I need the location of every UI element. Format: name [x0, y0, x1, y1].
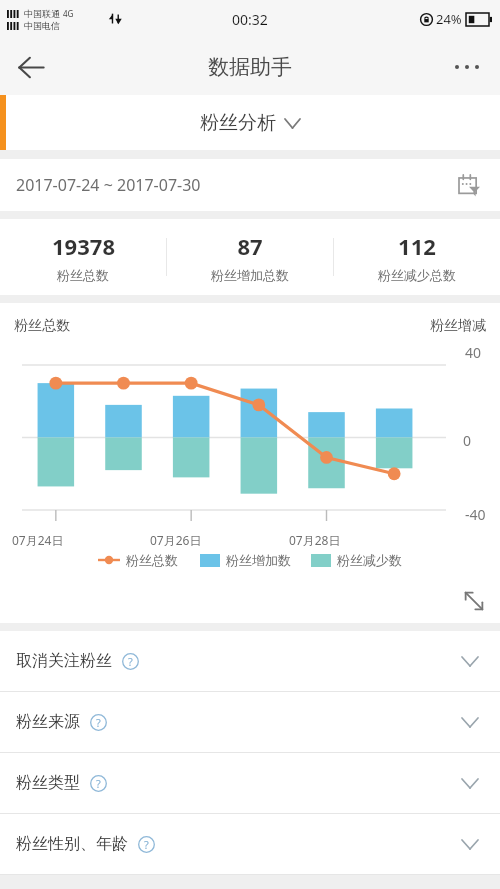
staticText: 07月24日: [12, 532, 150, 548]
staticText: 中国联通: [24, 8, 60, 19]
staticText: ?: [144, 837, 149, 852]
button[interactable]: 87: [167, 219, 333, 295]
button[interactable]: Expand chart: [456, 583, 492, 619]
staticText: 粉丝类型: [16, 773, 80, 793]
staticText: 粉丝增加数: [226, 552, 291, 568]
button[interactable]: 2017-07-24 ~ 2017-07-30: [0, 159, 500, 211]
button[interactable]: 粉丝来源: [0, 692, 500, 752]
button[interactable]: Back: [6, 42, 56, 92]
staticText: 中国电信: [24, 20, 60, 31]
button[interactable]: 粉丝分析: [200, 111, 300, 135]
staticText: 粉丝性别、年龄: [16, 834, 128, 854]
staticText: 数据助手: [208, 54, 292, 80]
staticText: 粉丝分析: [200, 111, 276, 135]
staticText: 07月28日: [289, 532, 428, 548]
staticText: 粉丝增加总数: [211, 267, 289, 283]
button[interactable]: Pick date range: [452, 168, 486, 202]
staticText: 粉丝减少总数: [378, 267, 456, 283]
staticText: -40: [465, 505, 486, 524]
button[interactable]: 取消关注粉丝: [0, 631, 500, 691]
button[interactable]: 粉丝类型: [0, 753, 500, 813]
staticText: 112: [398, 231, 436, 261]
staticText: 2017-07-24 ~ 2017-07-30: [16, 174, 201, 196]
staticText: ?: [96, 715, 101, 730]
staticText: 19378: [52, 231, 115, 261]
staticText: 粉丝增减: [430, 317, 486, 335]
staticText: 粉丝总数: [57, 267, 109, 283]
staticText: 粉丝总数: [126, 552, 178, 568]
staticText: 取消关注粉丝: [16, 651, 112, 671]
staticText: 粉丝减少数: [337, 552, 402, 568]
staticText: 24%: [436, 10, 462, 28]
staticText: ?: [96, 776, 101, 791]
staticText: 07月26日: [150, 532, 289, 548]
staticText: ?: [128, 654, 133, 669]
staticText: 粉丝来源: [16, 712, 80, 732]
button[interactable]: 112: [334, 219, 500, 295]
button[interactable]: 19378: [0, 219, 166, 295]
staticText: 粉丝总数: [14, 317, 70, 335]
button[interactable]: More options: [442, 42, 492, 92]
staticText: 87: [237, 231, 263, 261]
button[interactable]: 粉丝性别、年龄: [0, 814, 500, 874]
staticText: 40: [465, 343, 482, 362]
staticText: 00:32: [232, 10, 268, 29]
staticText: 0: [463, 431, 472, 450]
staticText: 4G: [63, 8, 74, 19]
